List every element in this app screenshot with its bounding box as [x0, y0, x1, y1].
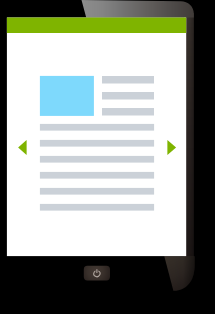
button[interactable]: Previous page: [12, 136, 34, 160]
button[interactable]: Power: [83, 264, 111, 282]
button[interactable]: Featured article: [36, 72, 158, 120]
button[interactable]: Next page: [164, 136, 186, 160]
